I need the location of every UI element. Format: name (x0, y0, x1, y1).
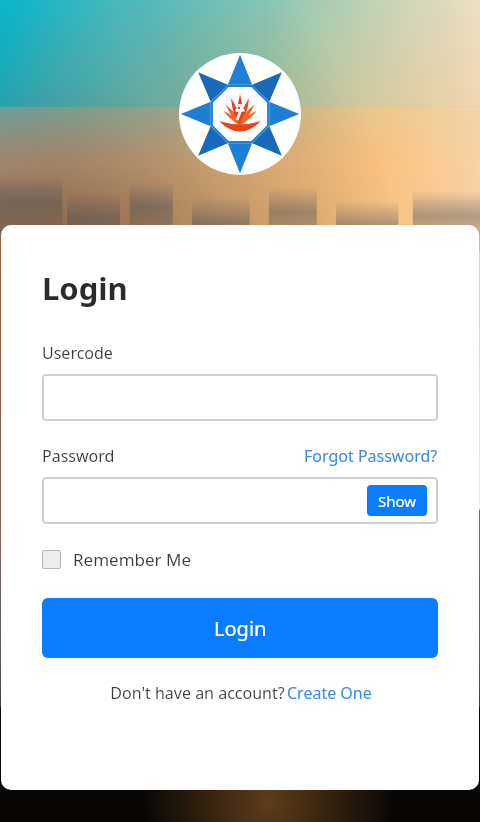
button[interactable]: Remember Me checkbox (42, 548, 192, 571)
staticText: Show (378, 491, 417, 511)
staticText: Login (214, 615, 267, 642)
button[interactable] (42, 374, 438, 421)
staticText: Login (42, 267, 128, 309)
staticText: Remember Me (73, 548, 192, 571)
staticText: Forgot Password? (304, 445, 438, 467)
button[interactable]: Forgot Password? (304, 445, 438, 467)
staticText: Usercode (42, 342, 113, 364)
button[interactable]: Show (367, 485, 427, 516)
staticText: Create One (287, 682, 372, 704)
button[interactable]: Create One (287, 682, 372, 704)
staticText: Password (42, 445, 115, 467)
staticText: Don't have an account? (108, 682, 287, 704)
button[interactable]: Show (42, 477, 438, 524)
other: Remember Me checkbox (42, 550, 61, 569)
button[interactable]: Login (42, 598, 438, 658)
